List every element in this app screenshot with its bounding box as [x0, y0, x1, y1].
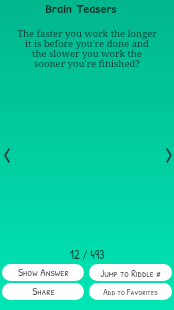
button[interactable]: Add to Favorites	[89, 283, 172, 300]
staticText: 12 / 493	[0, 246, 174, 262]
staticText: Add to Favorites	[103, 286, 158, 298]
staticText: The faster you work the longer it is bef…	[0, 27, 174, 70]
staticText: Brain Teasers	[0, 2, 168, 17]
button[interactable]: Jump to Riddle #	[89, 264, 172, 281]
button[interactable]: Show Answer	[2, 264, 84, 281]
staticText: Share	[32, 284, 55, 299]
button[interactable]: Share	[2, 283, 84, 300]
button[interactable]: Next riddle	[163, 143, 174, 167]
staticText: Jump to Riddle #	[100, 266, 161, 280]
staticText: Show Answer	[18, 265, 69, 280]
button[interactable]: Previous riddle	[1, 143, 13, 167]
